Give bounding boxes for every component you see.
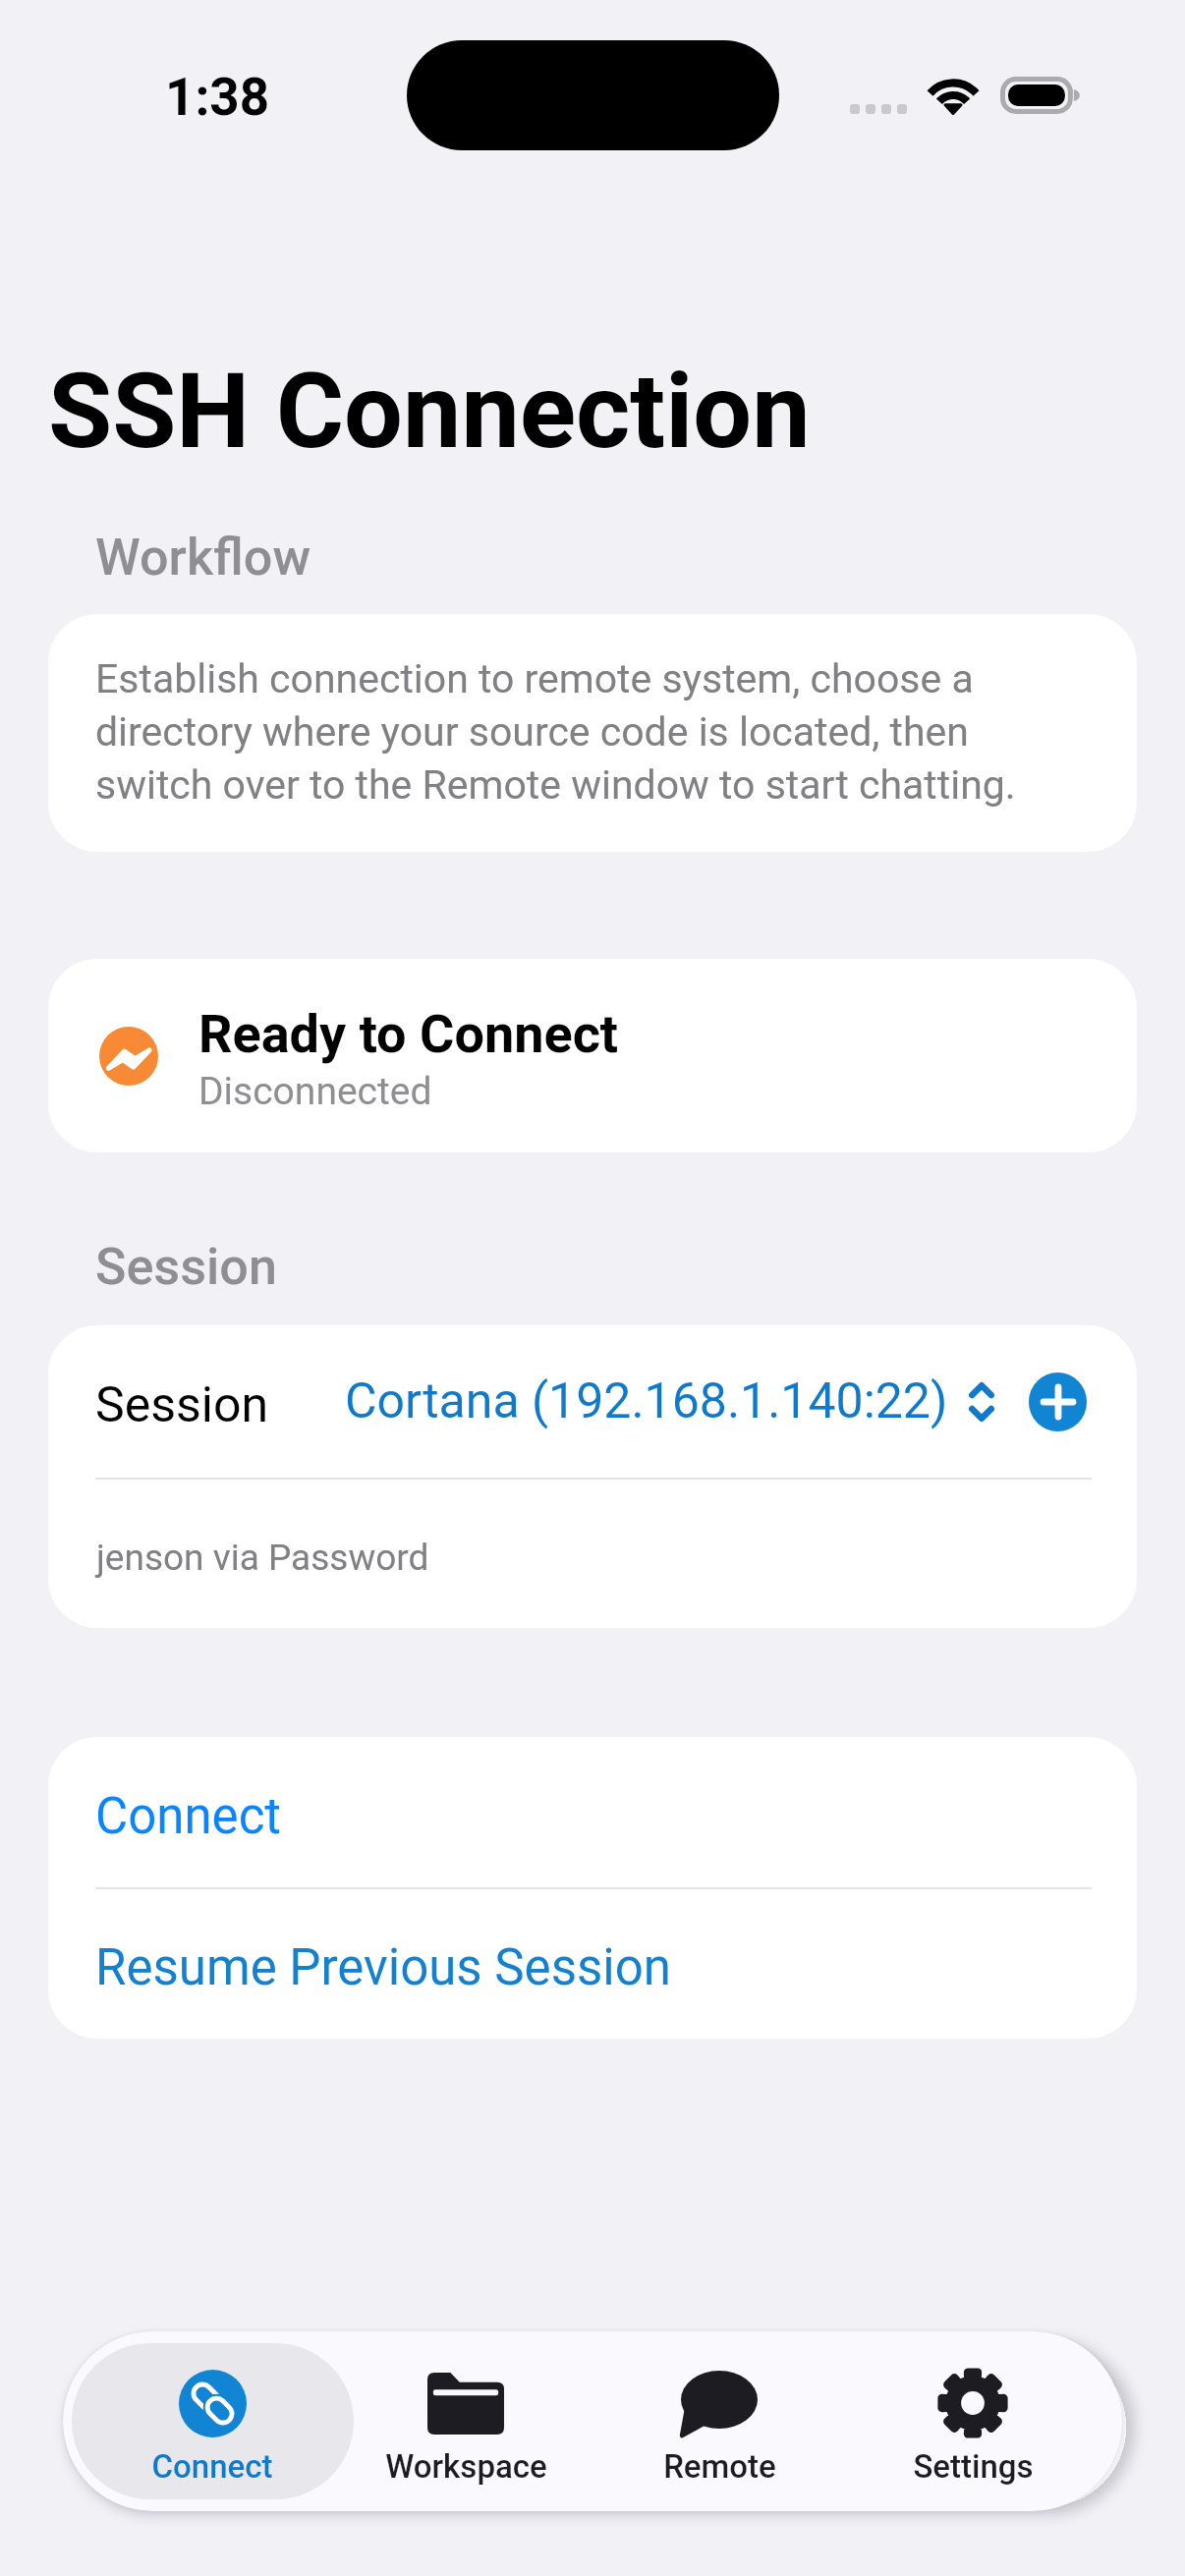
staticText: jenson via Password bbox=[96, 1537, 429, 1579]
button[interactable]: jenson via Password bbox=[48, 1480, 1137, 1628]
staticText: Connect bbox=[95, 1787, 282, 1846]
staticText: Remote bbox=[663, 2447, 776, 2486]
staticText: Cortana (192.168.1.140:22) bbox=[345, 1372, 948, 1430]
staticText: Workspace bbox=[385, 2447, 547, 2486]
button[interactable]: Session bbox=[48, 1325, 1137, 1478]
button[interactable]: Remote bbox=[592, 2343, 846, 2499]
staticText: Connect bbox=[151, 2447, 273, 2486]
staticText: Ready to Connect bbox=[198, 1003, 619, 1065]
staticText: Settings bbox=[913, 2447, 1034, 2486]
button[interactable]: Resume Previous Session bbox=[48, 1889, 1137, 2039]
button[interactable]: Add session bbox=[1029, 1372, 1087, 1431]
button[interactable]: Ready to Connect bbox=[48, 959, 1137, 1152]
staticText: 1:38 bbox=[165, 67, 270, 128]
button[interactable]: Establish connection to remote system, c… bbox=[48, 614, 1137, 852]
staticText: Disconnected bbox=[198, 1069, 432, 1114]
button[interactable]: Settings bbox=[846, 2343, 1100, 2499]
button[interactable]: Connect bbox=[48, 1737, 1137, 1887]
staticText: Session bbox=[95, 1376, 269, 1434]
staticText: Workflow bbox=[95, 528, 311, 588]
staticText: SSH Connection bbox=[48, 351, 811, 473]
button[interactable]: Workspace bbox=[339, 2343, 592, 2499]
staticText: Establish connection to remote system, c… bbox=[95, 655, 1078, 809]
button[interactable]: Connect bbox=[85, 2343, 339, 2499]
staticText: Session bbox=[95, 1237, 277, 1297]
staticText: Resume Previous Session bbox=[95, 1938, 671, 1997]
